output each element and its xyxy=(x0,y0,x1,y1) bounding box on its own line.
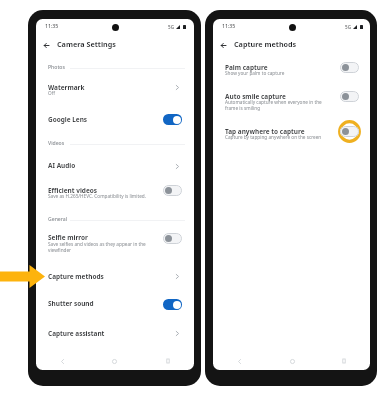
button[interactable]: Home xyxy=(266,351,318,370)
button[interactable]: Capture methods xyxy=(36,269,194,287)
staticText: Selfie mirror xyxy=(48,233,88,242)
staticText: Photos xyxy=(48,64,65,71)
button[interactable]: Auto smile capture xyxy=(340,91,359,102)
staticText: Camera Settings xyxy=(57,39,116,49)
button[interactable]: Watermark xyxy=(36,77,194,103)
button[interactable]: Tap anywhere to capture xyxy=(213,123,370,147)
button[interactable]: Google Lens xyxy=(163,114,182,125)
button[interactable]: Recent apps xyxy=(141,351,194,370)
staticText: Watermark xyxy=(48,83,85,92)
staticText: Tap anywhere to capture xyxy=(225,127,305,136)
button[interactable]: Shutter sound xyxy=(36,296,194,314)
button[interactable]: Efficient videos xyxy=(36,183,194,205)
staticText: General xyxy=(48,216,68,223)
button[interactable]: Selfie mirror xyxy=(36,230,194,258)
button[interactable]: Shutter sound xyxy=(163,299,182,310)
staticText: Save as H.265/HEVC. Compatibility is lim… xyxy=(48,193,154,199)
button[interactable]: Home xyxy=(88,351,141,370)
staticText: 11:35 xyxy=(222,22,236,29)
staticText: Capture by tapping anywhere on the scree… xyxy=(225,134,333,140)
button[interactable]: Back xyxy=(36,351,88,370)
button[interactable]: Selfie mirror xyxy=(163,233,182,244)
staticText: Automatically capture when everyone in t… xyxy=(225,99,326,111)
button[interactable]: Back xyxy=(213,351,266,370)
staticText: 5G xyxy=(168,24,174,30)
staticText: Auto smile capture xyxy=(225,92,286,101)
button[interactable]: Palm capture xyxy=(340,62,359,73)
button[interactable]: Capture assistant xyxy=(36,326,194,344)
staticText: Save selfies and videos as they appear i… xyxy=(48,241,152,253)
staticText: Efficient videos xyxy=(48,186,98,195)
staticText: Shutter sound xyxy=(48,299,94,308)
button[interactable]: Google Lens xyxy=(36,111,194,129)
staticText: Show your palm to capture xyxy=(225,70,330,76)
button[interactable]: Auto smile capture xyxy=(213,88,370,116)
staticText: AI Audio xyxy=(48,161,76,170)
button[interactable]: Palm capture xyxy=(213,59,370,81)
button[interactable]: Recent apps xyxy=(318,351,370,370)
button[interactable]: Efficient videos xyxy=(163,185,182,196)
staticText: Capture methods xyxy=(234,39,297,49)
staticText: Google Lens xyxy=(48,115,88,124)
button[interactable]: AI Audio xyxy=(36,158,194,176)
staticText: Capture assistant xyxy=(48,329,105,338)
button[interactable]: Back xyxy=(40,39,52,51)
button[interactable]: Tap anywhere to capture xyxy=(340,126,359,137)
staticText: 5G xyxy=(345,24,351,30)
staticText: Capture methods xyxy=(48,272,104,281)
button[interactable]: Back xyxy=(217,39,229,51)
staticText: Palm capture xyxy=(225,63,268,72)
staticText: Off xyxy=(48,90,153,96)
staticText: Videos xyxy=(48,140,65,147)
staticText: 11:35 xyxy=(45,22,59,29)
